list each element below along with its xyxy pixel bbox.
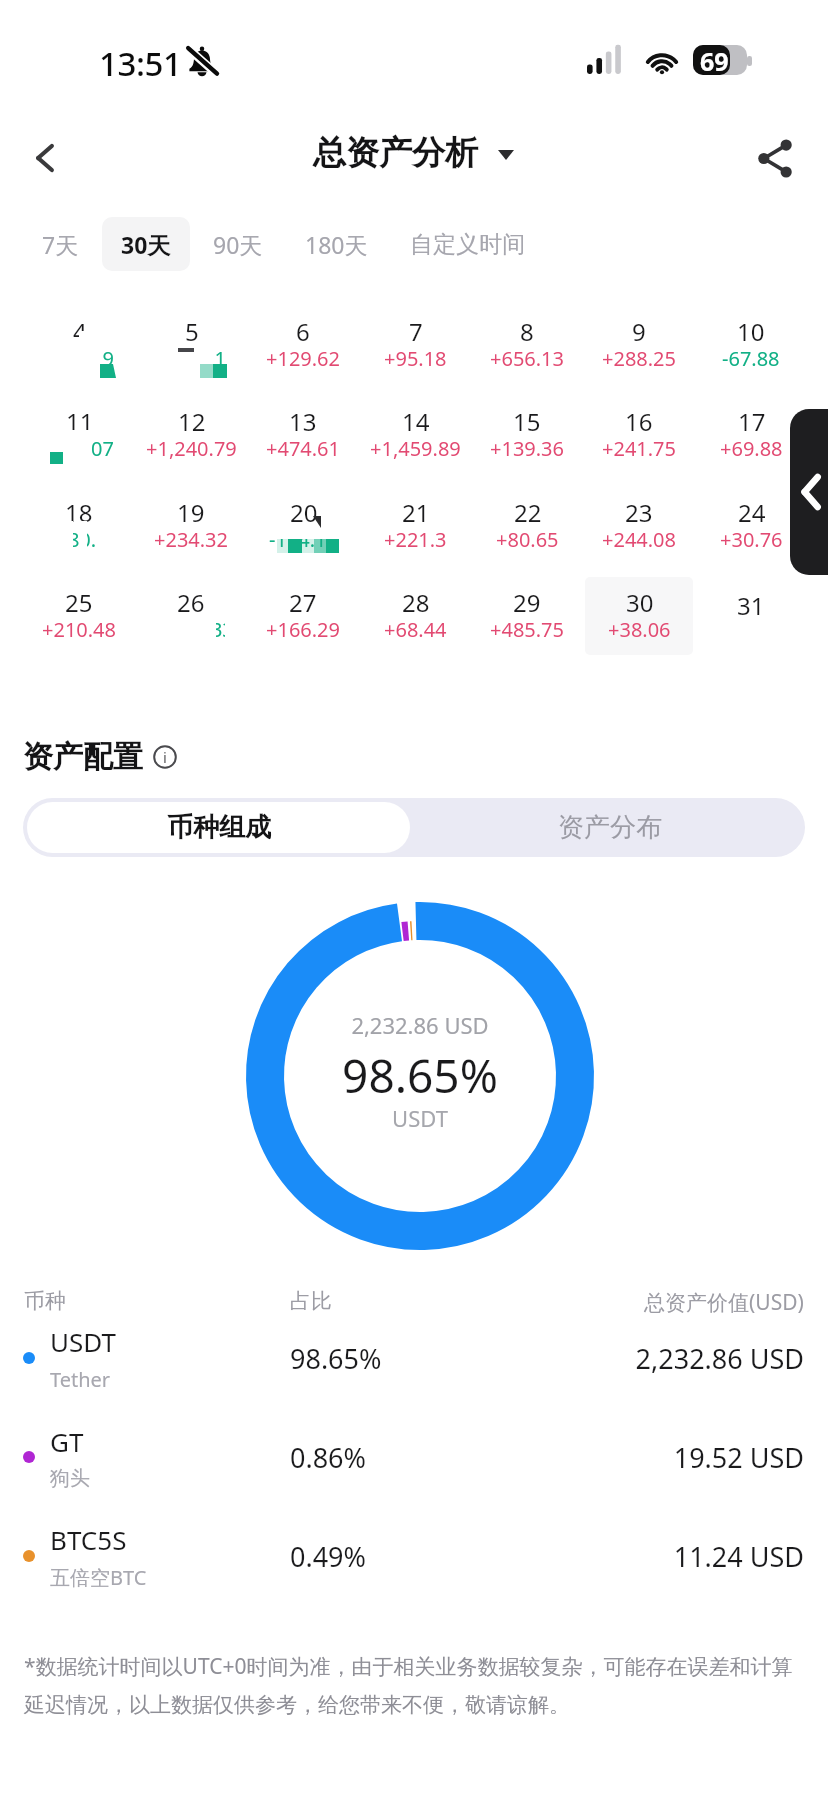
staticText: +244.08	[602, 526, 676, 553]
button[interactable]: 资产分布	[414, 798, 805, 857]
staticText: 27	[289, 586, 317, 619]
staticText: -300.07	[45, 435, 114, 462]
button[interactable]: 16	[585, 396, 693, 474]
staticText: -174.16	[269, 526, 338, 553]
button[interactable]: GT	[0, 1408, 828, 1506]
staticText: 29	[513, 586, 541, 619]
button[interactable]: 27	[249, 577, 357, 655]
staticText: 180天	[305, 229, 368, 260]
button[interactable]: 180天	[286, 217, 387, 271]
staticText: +166.29	[266, 616, 340, 643]
button[interactable]: 23	[585, 487, 693, 565]
staticText: USDT	[246, 1103, 594, 1133]
staticText: +221.3	[384, 526, 447, 553]
button[interactable]: 总资产分析	[313, 132, 514, 174]
staticText: 31	[737, 589, 765, 622]
staticText: 13	[289, 405, 317, 438]
staticText: 25	[65, 586, 93, 619]
staticText: 资产分布	[558, 811, 662, 844]
staticText: *数据统计时间以UTC+0时间为准，由于相关业务数据较复杂，可能存在误差和计算延…	[24, 1652, 808, 1719]
button[interactable]: 6	[249, 306, 357, 384]
staticText: GT	[50, 1424, 84, 1459]
staticText: 19	[177, 496, 205, 529]
staticText: 6	[296, 315, 310, 348]
button[interactable]: 13	[249, 396, 357, 474]
staticText: 11.24 USD	[608, 1538, 804, 1575]
staticText: +68.44	[384, 616, 447, 643]
staticText: +69.88	[720, 435, 783, 462]
staticText: +485.75	[490, 616, 564, 643]
button[interactable]: Open panel	[790, 409, 828, 575]
staticText: 30	[626, 586, 654, 619]
staticText: 13:51	[99, 41, 182, 86]
staticText: 5	[185, 315, 199, 348]
staticText: 98.65%	[246, 1044, 594, 1107]
button[interactable]: 30	[585, 577, 693, 655]
staticText: 占比	[290, 1288, 332, 1314]
button[interactable]: USDT	[0, 1309, 828, 1407]
staticText: 28	[402, 586, 430, 619]
staticText: +656.13	[490, 345, 564, 372]
button[interactable]: 17	[697, 396, 805, 474]
staticText: 15	[513, 405, 541, 438]
button[interactable]: 90天	[194, 217, 282, 271]
staticText: 90天	[213, 229, 263, 260]
button[interactable]: 14	[361, 396, 469, 474]
button[interactable]: 18	[25, 487, 133, 565]
button[interactable]: 26	[137, 577, 245, 655]
button[interactable]: 21	[361, 487, 469, 565]
staticText: 资产配置	[23, 738, 143, 776]
button[interactable]: 4	[25, 306, 133, 384]
staticText: 24	[738, 496, 766, 529]
button[interactable]: 31	[697, 577, 805, 655]
button[interactable]: 25	[25, 577, 133, 655]
button[interactable]: 币种组成	[27, 802, 410, 853]
staticText: 4	[73, 315, 87, 348]
staticText: i	[163, 747, 167, 767]
button[interactable]: 10	[697, 306, 805, 384]
button[interactable]: 7天	[23, 217, 98, 271]
button[interactable]: 5	[137, 306, 245, 384]
staticText: +210.48	[42, 616, 116, 643]
staticText: 16	[625, 405, 653, 438]
staticText: 26	[177, 586, 205, 619]
button[interactable]: 28	[361, 577, 469, 655]
staticText: -67.88	[722, 345, 780, 372]
staticText: 21	[402, 496, 430, 529]
button[interactable]: 15	[473, 396, 581, 474]
button[interactable]: 12	[137, 396, 245, 474]
staticText: 9	[632, 315, 646, 348]
button[interactable]: 7	[361, 306, 469, 384]
staticText: +1,240.79	[146, 435, 237, 462]
staticText: 7	[409, 315, 423, 348]
button[interactable]: 22	[473, 487, 581, 565]
staticText: 98.65%	[290, 1340, 608, 1377]
staticText: 23	[625, 496, 653, 529]
button[interactable]: 11	[25, 396, 133, 474]
staticText: 11	[66, 405, 94, 438]
staticText: 总资产分析	[313, 132, 478, 174]
button[interactable]: BTC5S	[0, 1507, 828, 1605]
staticText: 8	[520, 315, 534, 348]
button[interactable]: Share	[751, 134, 799, 182]
staticText: 19.52 USD	[608, 1439, 804, 1476]
staticText: -1,118.33	[148, 616, 234, 643]
staticText: 7天	[42, 229, 79, 260]
button[interactable]: 9	[585, 306, 693, 384]
staticText: 14	[402, 405, 430, 438]
button[interactable]: 20	[249, 487, 357, 565]
button[interactable]: 24	[697, 487, 805, 565]
button[interactable]: 8	[473, 306, 581, 384]
button[interactable]: Back	[21, 134, 69, 182]
button[interactable]: 19	[137, 487, 245, 565]
staticText: +129.62	[266, 345, 340, 372]
button[interactable]: 30天	[102, 217, 190, 271]
button[interactable]: 29	[473, 577, 581, 655]
staticText: 30天	[121, 229, 171, 260]
staticText: -280.6	[50, 526, 108, 553]
button[interactable]: 自定义时间	[391, 217, 544, 271]
staticText: 币种	[24, 1288, 66, 1314]
staticText: -217.21	[157, 345, 226, 372]
staticText: 0.49%	[290, 1538, 608, 1575]
staticText: +474.61	[266, 435, 340, 462]
